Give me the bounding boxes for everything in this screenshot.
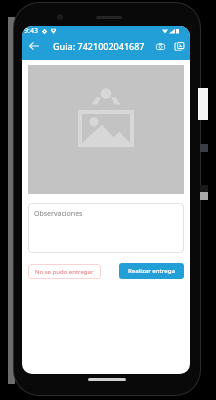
button[interactable]: Realizar entrega [119, 263, 184, 279]
staticText: No se pudo entregar [35, 268, 94, 276]
button[interactable]: Observaciones [28, 203, 184, 253]
button[interactable]: Back [25, 37, 43, 55]
button[interactable]: Gallery [171, 37, 189, 55]
button[interactable]: Take photo [151, 37, 169, 55]
staticText: 9:43 [24, 26, 38, 36]
staticText: Realizar entrega [128, 267, 175, 275]
staticText: Observaciones [34, 209, 83, 219]
staticText: Guia: 7421002041687 [53, 40, 145, 52]
button[interactable]: No se pudo entregar [28, 264, 101, 279]
